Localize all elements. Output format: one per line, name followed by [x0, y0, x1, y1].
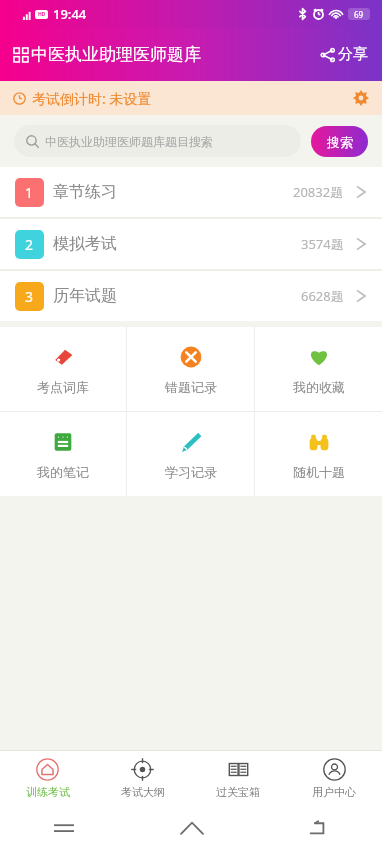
staticText: 2 [25, 235, 34, 254]
button[interactable]: 随机十题 [255, 412, 382, 496]
staticText: 随机十题 [293, 464, 345, 480]
button[interactable]: 考点词库 [0, 327, 126, 411]
button[interactable]: 分享 [307, 37, 382, 72]
staticText: 3574题 [301, 235, 344, 253]
button[interactable]: 中医执业助理医师题库题目搜索 [14, 125, 301, 157]
staticText: 考点词库 [37, 379, 89, 395]
button[interactable]: Home [128, 806, 255, 850]
button[interactable]: 考试大纲 [95, 751, 190, 806]
staticText: 我的笔记 [37, 464, 89, 480]
staticText: 20832题 [293, 183, 344, 201]
staticText: 我的收藏 [293, 379, 345, 395]
staticText: 69 [354, 9, 364, 20]
staticText: 19:44 [53, 5, 87, 23]
staticText: 学习记录 [165, 464, 217, 480]
button[interactable]: 过关宝箱 [190, 751, 286, 806]
button[interactable]: 2 [0, 219, 382, 269]
staticText: 过关宝箱 [216, 785, 260, 799]
staticText: 3 [25, 287, 34, 306]
staticText: 分享 [338, 45, 368, 64]
staticText: 考试倒计时: 未设置 [32, 89, 152, 108]
button[interactable]: 学习记录 [127, 412, 254, 496]
button[interactable]: 我的收藏 [255, 327, 382, 411]
button[interactable]: 我的笔记 [0, 412, 126, 496]
staticText: 用户中心 [312, 785, 356, 799]
button[interactable]: Settings [340, 82, 382, 114]
staticText: 6628题 [301, 287, 344, 305]
button[interactable]: 错题记录 [127, 327, 254, 411]
staticText: 模拟考试 [53, 234, 117, 254]
button[interactable]: 1 [0, 167, 382, 217]
staticText: HD [38, 11, 46, 18]
staticText: 考试大纲 [121, 785, 165, 799]
button[interactable]: 训练考试 [0, 751, 95, 806]
staticText: 训练考试 [26, 785, 70, 799]
button[interactable]: 用户中心 [286, 751, 382, 806]
staticText: 错题记录 [165, 379, 217, 395]
staticText: 章节练习 [53, 182, 117, 202]
staticText: 中医执业助理医师题库题目搜索 [45, 134, 213, 149]
button[interactable]: Back [255, 806, 382, 850]
button[interactable]: 搜索 [311, 126, 368, 157]
staticText: 搜索 [327, 134, 353, 150]
staticText: 历年试题 [53, 286, 117, 306]
staticText: 中医执业助理医师题库 [31, 44, 201, 65]
button[interactable]: Recent apps [0, 806, 128, 850]
button[interactable]: 3 [0, 271, 382, 321]
staticText: 1 [25, 183, 34, 202]
